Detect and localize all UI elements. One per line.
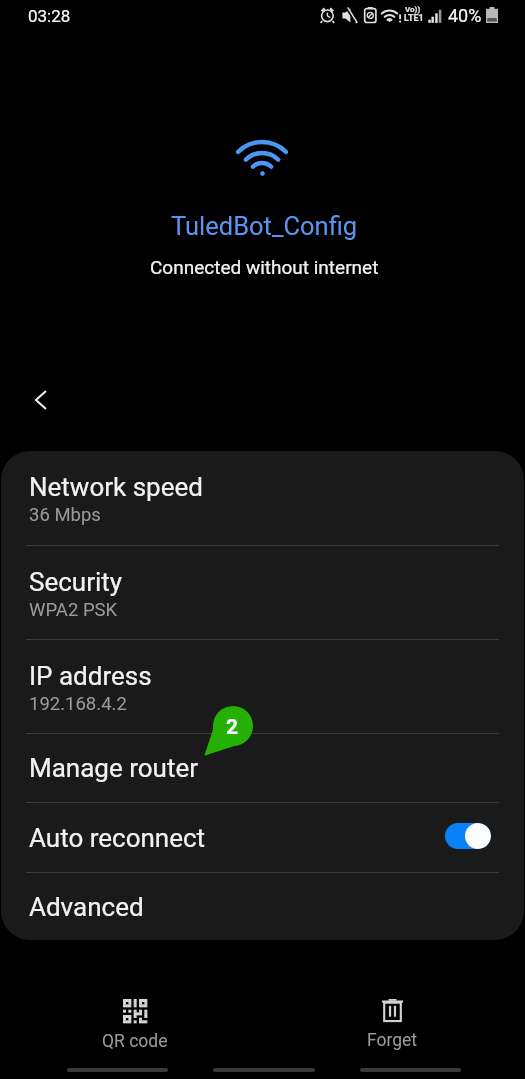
button[interactable]: Forget xyxy=(332,999,452,1051)
button[interactable]: Back xyxy=(17,376,65,424)
staticText: 40% xyxy=(448,5,482,26)
staticText: LTE1 xyxy=(404,13,424,24)
button[interactable]: Network speed xyxy=(1,451,524,545)
staticText: 2 xyxy=(226,715,239,740)
staticText: Security xyxy=(29,567,123,597)
button[interactable]: Advanced xyxy=(1,873,524,940)
staticText: IP address xyxy=(29,661,152,691)
staticText: Vo)) xyxy=(405,5,421,14)
staticText: Advanced xyxy=(29,892,144,922)
staticText: Network speed xyxy=(29,472,203,502)
staticText: Forget xyxy=(367,1030,418,1051)
button[interactable]: Security xyxy=(1,546,524,639)
button[interactable]: Manage router xyxy=(1,734,524,802)
staticText: WPA2 PSK xyxy=(29,599,118,621)
staticText: Auto reconnect xyxy=(29,823,206,853)
staticText: QR code xyxy=(102,1031,168,1052)
button[interactable]: Auto reconnect xyxy=(1,803,524,872)
button[interactable]: IP address xyxy=(1,640,524,733)
button[interactable]: QR code xyxy=(75,999,195,1052)
staticText: Manage router xyxy=(29,753,198,783)
staticText: 03:28 xyxy=(28,6,71,26)
staticText: TuledBot_Config xyxy=(171,211,358,241)
staticText: Connected without internet xyxy=(150,256,379,278)
staticText: 36 Mbps xyxy=(29,504,101,526)
staticText: 192.168.4.2 xyxy=(29,693,127,715)
